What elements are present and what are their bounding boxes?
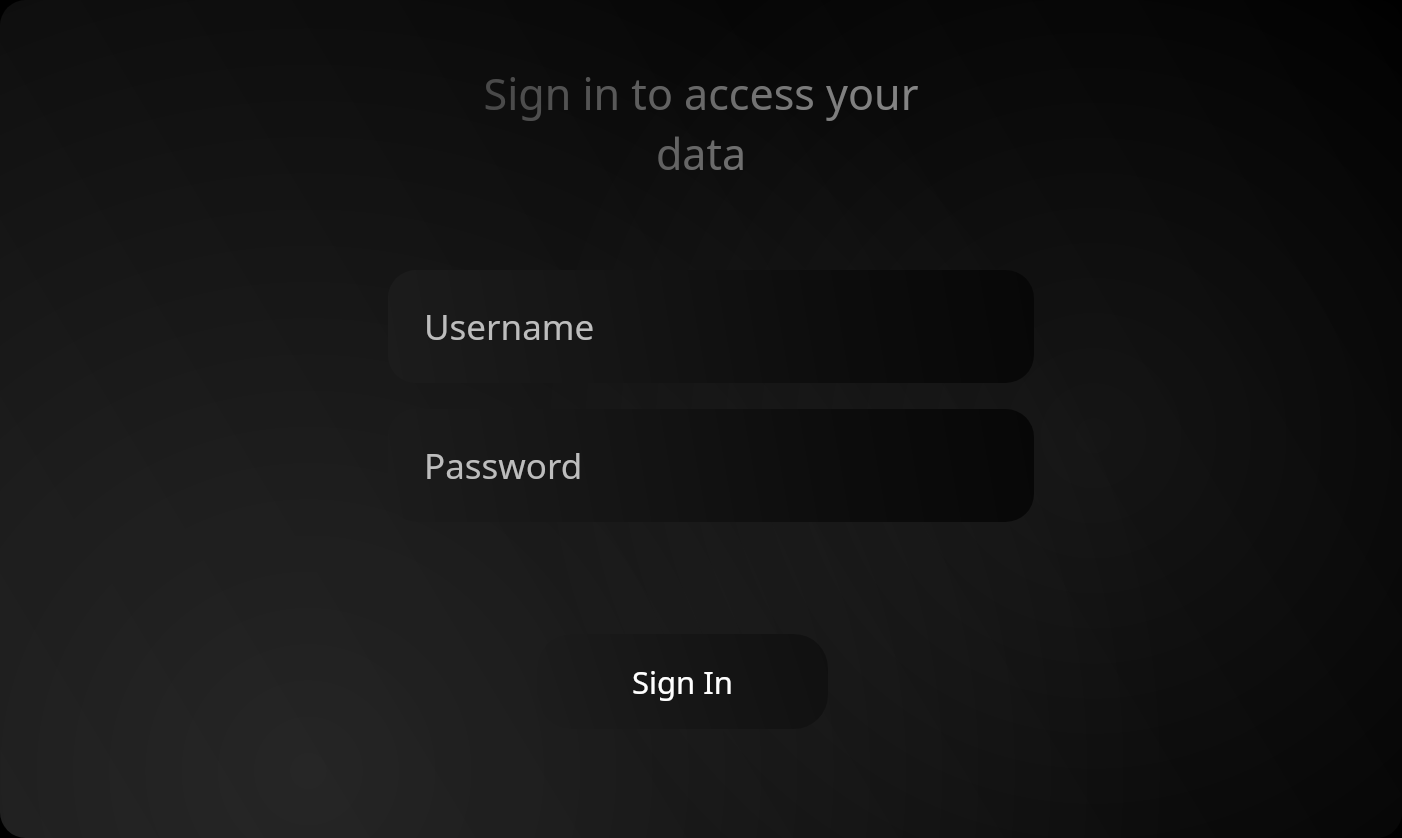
button[interactable]: Username [388,270,1034,383]
button[interactable]: Password [388,409,1034,522]
staticText: Sign In [632,661,733,703]
staticText: Username [424,303,595,351]
button[interactable]: Sign In [537,634,828,729]
staticText: Sign in to access your data [380,64,1022,183]
staticText: Password [424,442,583,490]
